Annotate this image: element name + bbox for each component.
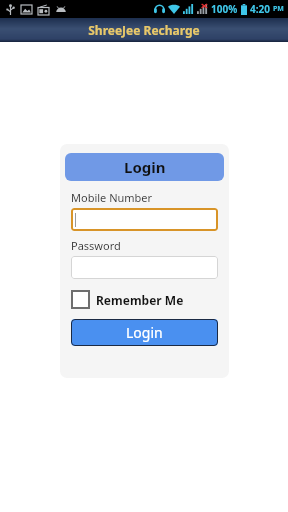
staticText: PM [273, 4, 284, 14]
staticText: Login [126, 323, 163, 342]
button[interactable] [71, 256, 218, 279]
button[interactable]: Remember Me [71, 290, 184, 309]
staticText: Login [124, 157, 166, 177]
staticText: 4:20 [250, 2, 270, 16]
staticText: 100% [211, 2, 238, 16]
staticText: Password [71, 238, 121, 253]
button[interactable] [71, 208, 218, 231]
staticText: Mobile Number [71, 190, 153, 205]
button[interactable]: Login [65, 153, 224, 181]
staticText: Remember Me [96, 292, 184, 308]
staticText: ShreeJee Recharge [88, 22, 200, 38]
button[interactable]: Login [71, 319, 218, 346]
